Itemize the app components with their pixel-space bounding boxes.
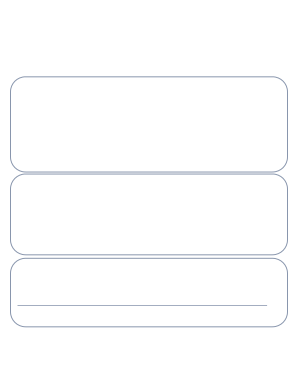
button[interactable]: Card one bbox=[10, 77, 287, 172]
button[interactable]: Card two bbox=[10, 174, 287, 255]
